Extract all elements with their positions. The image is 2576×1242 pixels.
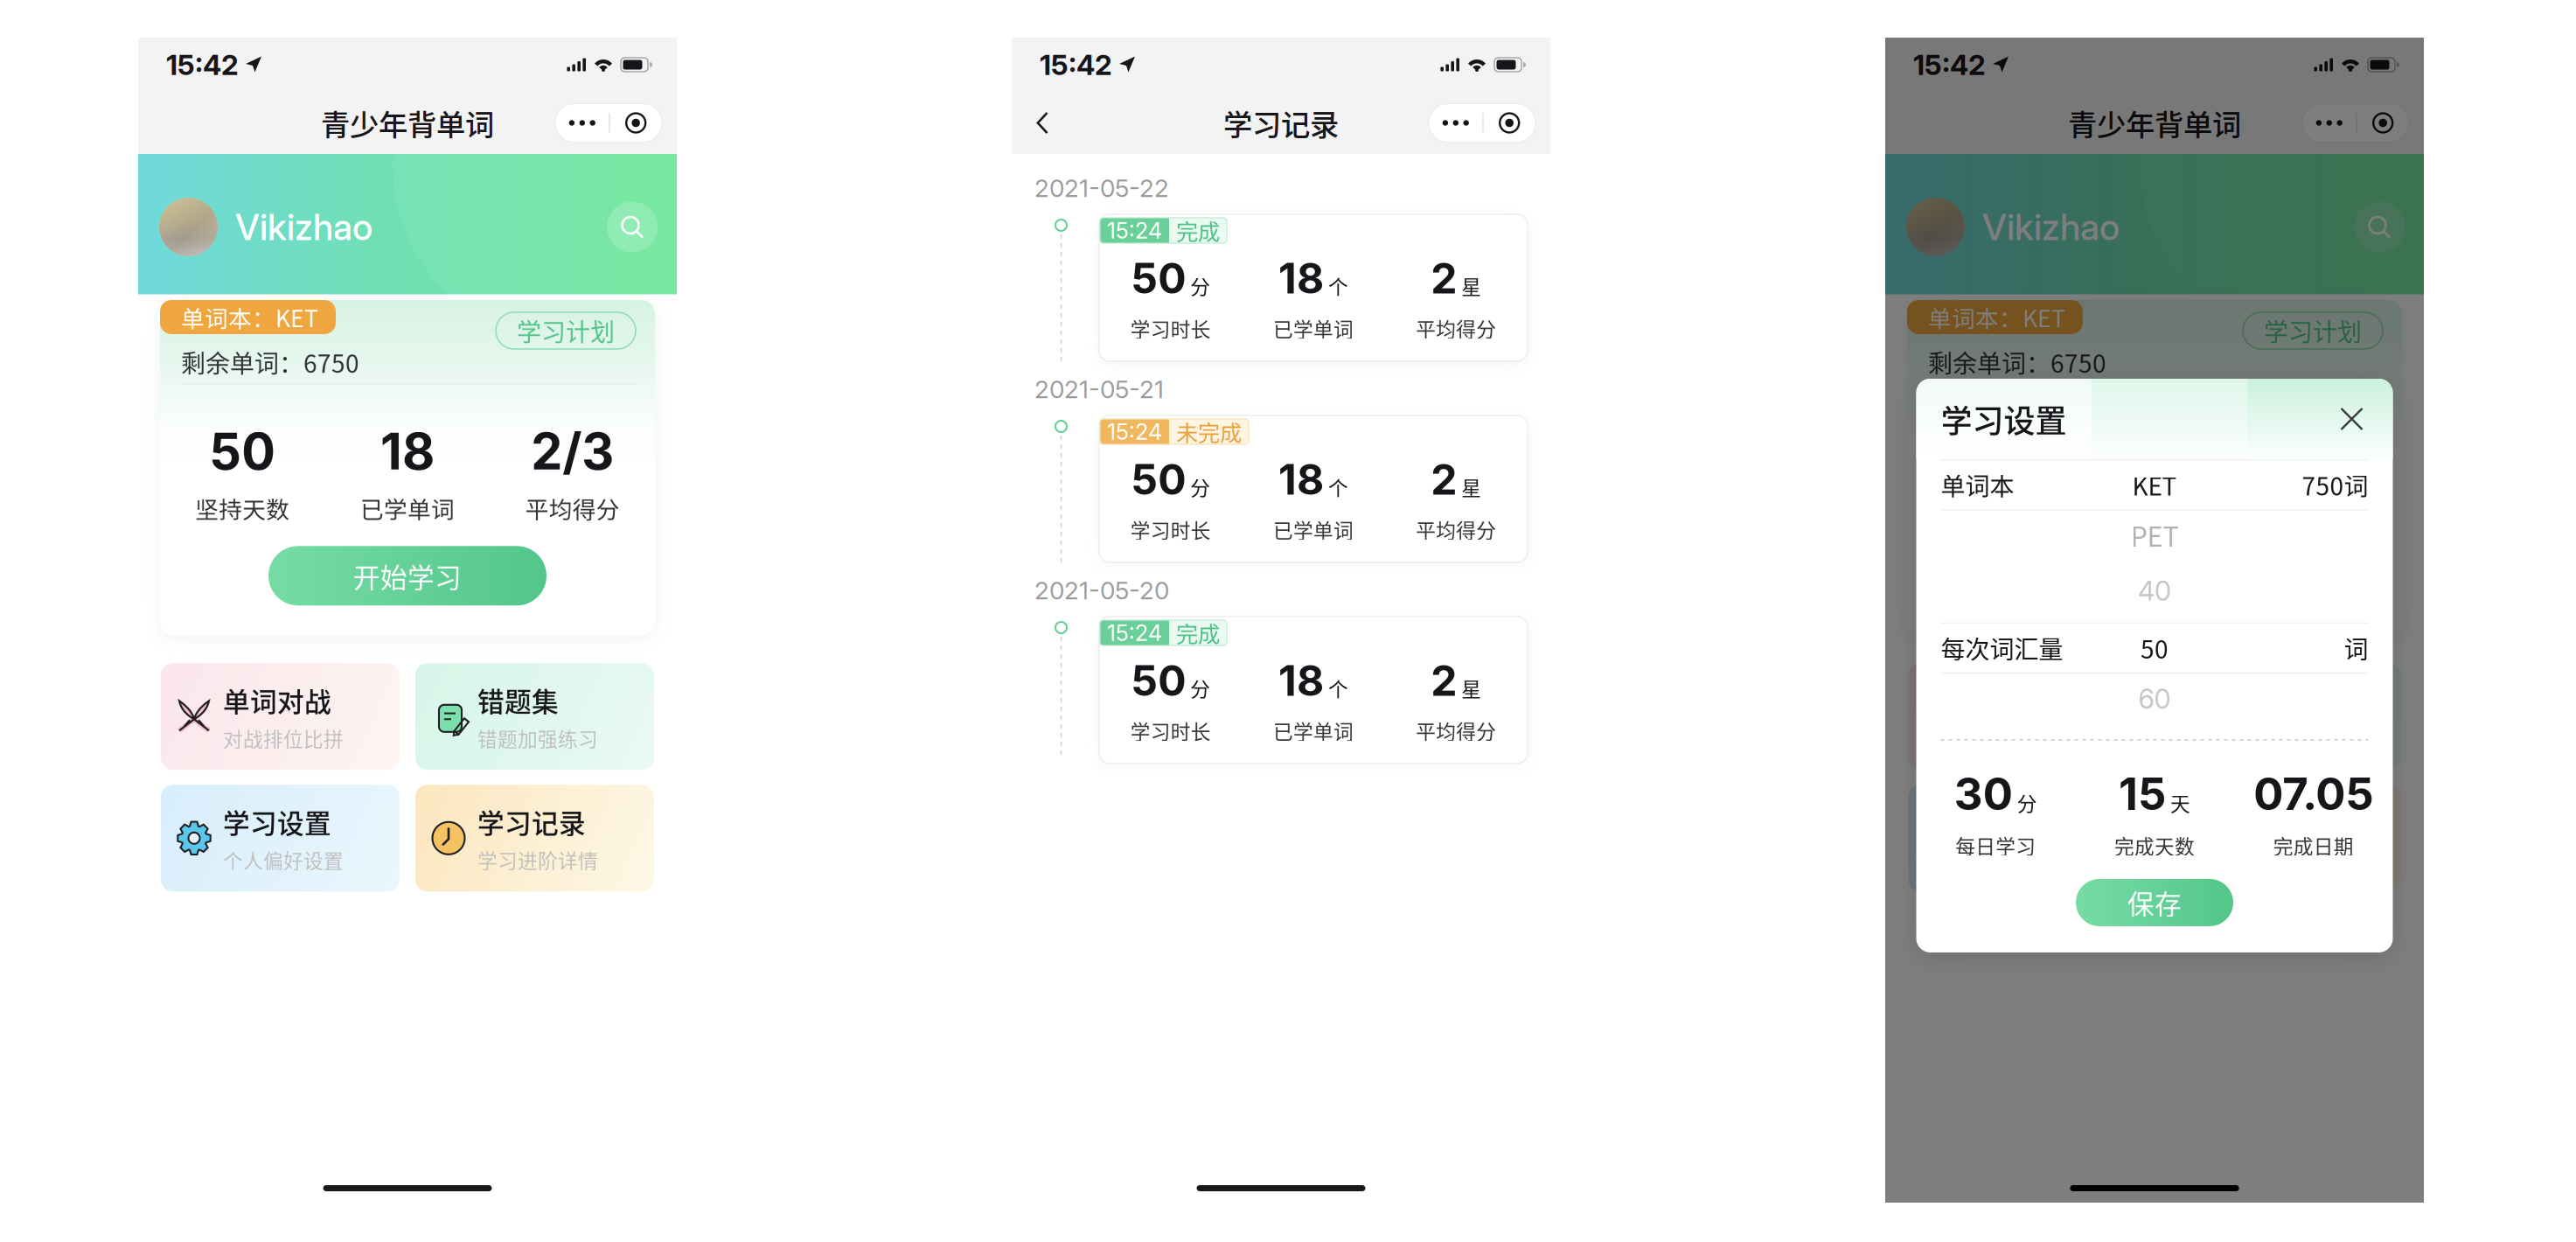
staticText: 已学单词 [360, 491, 455, 525]
button[interactable]: 错题集 [415, 663, 654, 770]
staticText: 个 [1328, 271, 1348, 300]
button[interactable]: 单词对战 [1908, 663, 2147, 770]
staticText: 15 [2119, 767, 2166, 821]
staticText: PET [2130, 516, 2179, 554]
staticText: 每日学习 [1955, 831, 2036, 860]
staticText: 2021-05-20 [1034, 576, 1169, 605]
staticText: 词 [2344, 630, 2368, 666]
staticText: 学习进阶详情 [2224, 845, 2345, 874]
staticText: 学习记录 [477, 802, 586, 841]
staticText: 学习记录 [2224, 802, 2333, 841]
staticText: 2021-05-21 [1034, 374, 1164, 404]
button[interactable]: 错题集 [2162, 663, 2401, 770]
staticText: 平均得分 [525, 491, 620, 525]
staticText: 15:24 [1107, 418, 1162, 445]
staticText: 开始学习 [353, 556, 462, 595]
staticText: 学习设置 [1941, 396, 2067, 442]
staticText: 错题加强练习 [477, 724, 598, 753]
button[interactable]: 学习设置 [1908, 785, 2147, 892]
staticText: 开始学习 [2100, 556, 2209, 595]
staticText: 15:42 [166, 48, 239, 82]
button[interactable]: Close [2330, 397, 2374, 441]
staticText: Vikizhao [235, 205, 372, 249]
staticText: 平均得分 [2272, 491, 2367, 525]
staticText: 剩余单词：6750 [1928, 344, 2106, 380]
button[interactable]: 单词对战 [161, 663, 400, 770]
staticText: 错题集 [477, 681, 559, 719]
staticText: 个 [1328, 674, 1348, 702]
staticText: 剩余单词：6750 [181, 344, 359, 380]
staticText: 已学单词 [2107, 491, 2202, 525]
button[interactable]: 学习记录 [2162, 785, 2401, 892]
staticText: 分 [1190, 473, 1210, 501]
staticText: 完成 [1176, 617, 1220, 649]
button[interactable]: More [556, 104, 609, 142]
staticText: 星 [1461, 271, 1482, 300]
staticText: 完成日期 [2273, 831, 2354, 860]
staticText: 未完成 [1176, 416, 1242, 448]
staticText: 18 [1278, 253, 1324, 304]
staticText: 分 [1190, 271, 1210, 300]
staticText: 50 [1131, 454, 1186, 505]
button[interactable]: Search [2354, 202, 2405, 252]
staticText: 50 [1956, 421, 2023, 482]
staticText: 学习记录 [1223, 102, 1339, 144]
staticText: 2 [1431, 253, 1457, 304]
staticText: 学习计划 [2264, 313, 2362, 348]
button[interactable]: 学习记录 [415, 785, 654, 892]
staticText: 学习进阶详情 [477, 845, 598, 874]
staticText: 完成天数 [2114, 831, 2195, 860]
staticText: 对战排位比拼 [223, 724, 344, 753]
button[interactable]: Close page [610, 104, 662, 142]
button[interactable]: 学习计划 [2243, 312, 2383, 349]
staticText: 40 [2138, 575, 2171, 607]
staticText: 青少年背单词 [2068, 102, 2241, 144]
staticText: 18 [1278, 454, 1324, 505]
staticText: 2 [1431, 655, 1457, 706]
staticText: 个人偏好设置 [223, 845, 344, 874]
staticText: 15:24 [1107, 217, 1162, 244]
staticText: 学习时长 [1130, 716, 1211, 745]
staticText: 分 [1190, 674, 1210, 702]
staticText: 18 [1278, 655, 1324, 706]
staticText: 个人偏好设置 [1970, 845, 2091, 874]
staticText: 2/3 [531, 421, 614, 482]
staticText: 2/3 [2278, 421, 2361, 482]
staticText: 50 [209, 421, 276, 482]
staticText: 单词本 [1941, 467, 2014, 502]
staticText: 750词 [2302, 467, 2368, 502]
staticText: 平均得分 [1416, 515, 1496, 544]
staticText: 分 [2017, 788, 2037, 817]
staticText: Vikizhao [1982, 205, 2120, 249]
button[interactable]: 开始学习 [268, 546, 547, 606]
button[interactable]: 开始学习 [2016, 546, 2294, 606]
staticText: 单词本：KET [1928, 300, 2065, 334]
staticText: 平均得分 [1416, 314, 1496, 343]
button[interactable]: 保存 [2076, 879, 2233, 926]
staticText: 已学单词 [1273, 515, 1354, 544]
staticText: 学习计划 [517, 313, 615, 348]
staticText: 15:42 [1913, 48, 1986, 82]
button[interactable]: More [1429, 104, 1482, 142]
staticText: 星 [1461, 473, 1482, 501]
staticText: 已学单词 [1273, 716, 1354, 745]
button[interactable]: Close page [1484, 104, 1535, 142]
staticText: 保存 [2127, 883, 2182, 922]
button[interactable]: Search [607, 202, 658, 252]
staticText: 单词对战 [223, 681, 331, 719]
button[interactable]: 学习设置 [161, 785, 400, 892]
staticText: 2 [1431, 454, 1457, 505]
staticText: 坚持天数 [195, 491, 290, 525]
button[interactable]: Back [1024, 103, 1061, 143]
button[interactable]: Close page [2357, 104, 2409, 142]
staticText: 学习时长 [1130, 314, 1211, 343]
staticText: 学习时长 [1130, 515, 1211, 544]
staticText: 个 [1328, 473, 1348, 501]
button[interactable]: More [2303, 104, 2356, 142]
staticText: 50 [1131, 655, 1186, 706]
button[interactable]: 学习计划 [496, 312, 636, 349]
staticText: 学习设置 [223, 802, 331, 841]
staticText: 18 [2127, 421, 2182, 482]
staticText: 青少年背单词 [321, 102, 494, 144]
